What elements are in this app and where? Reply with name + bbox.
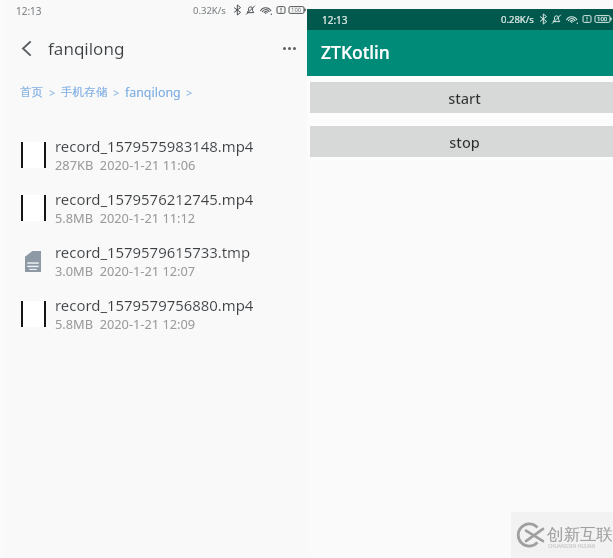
- staticText: fanqilong: [48, 37, 125, 60]
- button[interactable]: record_1579575983148.mp4: [4, 128, 307, 181]
- staticText: >: [108, 86, 125, 100]
- staticText: 287KB 2020-1-21 11:06: [55, 156, 196, 173]
- staticText: CHUANGXIN HULIAN: [548, 543, 596, 550]
- staticText: 12:13: [322, 13, 348, 27]
- staticText: 0.32K/s: [193, 4, 226, 17]
- staticText: >: [181, 86, 193, 100]
- staticText: >: [44, 86, 61, 100]
- staticText: record_1579579615733.tmp: [55, 242, 251, 262]
- staticText: record_1579575983148.mp4: [55, 136, 254, 156]
- staticText: record_1579576212745.mp4: [55, 189, 254, 209]
- button[interactable]: fanqilong: [125, 84, 181, 101]
- staticText: 100: [597, 15, 608, 23]
- staticText: 12:13: [16, 4, 42, 18]
- button[interactable]: Back: [10, 32, 42, 64]
- staticText: 0.28K/s: [501, 13, 534, 26]
- staticText: 创新互联: [547, 524, 613, 545]
- staticText: record_1579579756880.mp4: [55, 295, 254, 315]
- staticText: stop: [449, 132, 480, 152]
- staticText: start: [448, 88, 481, 108]
- button[interactable]: More options: [273, 32, 305, 64]
- button[interactable]: stop: [310, 126, 613, 157]
- button[interactable]: 首页: [20, 85, 44, 100]
- staticText: 5.8MB 2020-1-21 11:12: [55, 209, 196, 226]
- button[interactable]: start: [310, 82, 613, 113]
- button[interactable]: record_1579579756880.mp4: [4, 287, 307, 340]
- staticText: 100: [291, 6, 302, 14]
- button[interactable]: record_1579576212745.mp4: [4, 181, 307, 234]
- button[interactable]: record_1579579615733.tmp: [4, 234, 307, 287]
- staticText: 5.8MB 2020-1-21 12:09: [55, 315, 196, 332]
- staticText: 3.0MB 2020-1-21 12:07: [55, 262, 196, 279]
- staticText: ZTKotlin: [321, 40, 390, 64]
- button[interactable]: 手机存储: [61, 85, 108, 100]
